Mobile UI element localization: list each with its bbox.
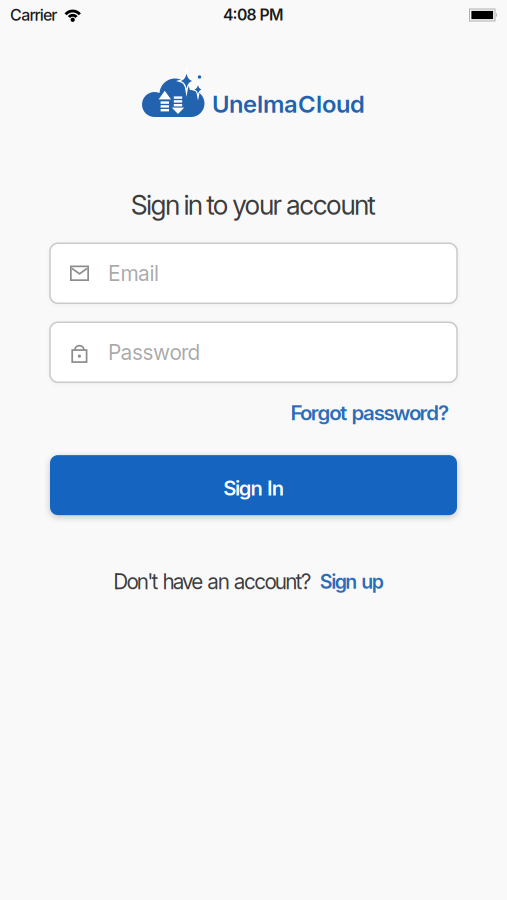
staticText: Forgot bbox=[290, 400, 347, 425]
staticText: UnelmaCloud bbox=[212, 89, 365, 118]
button[interactable]: Password bbox=[50, 322, 457, 382]
staticText: have bbox=[162, 569, 203, 594]
staticText: to bbox=[206, 189, 229, 221]
button[interactable]: Forgot password? bbox=[290, 400, 449, 425]
staticText: In bbox=[267, 476, 284, 500]
staticText: account? bbox=[234, 569, 312, 594]
staticText: Sign bbox=[320, 570, 357, 593]
staticText: your bbox=[232, 189, 282, 221]
staticText: an bbox=[207, 569, 230, 594]
button[interactable]: Email bbox=[50, 243, 457, 303]
button[interactable]: Sign up bbox=[320, 570, 384, 593]
button[interactable]: Sign bbox=[50, 455, 457, 515]
staticText: Email bbox=[108, 261, 159, 286]
staticText: Carrier bbox=[10, 5, 57, 25]
staticText: in bbox=[183, 189, 203, 221]
staticText: Sign bbox=[223, 476, 263, 500]
staticText: up bbox=[361, 570, 384, 593]
staticText: Password bbox=[108, 340, 200, 365]
staticText: 4:08 PM bbox=[223, 5, 284, 24]
staticText: Sign bbox=[131, 189, 180, 221]
staticText: Don't bbox=[113, 569, 158, 594]
staticText: account bbox=[286, 189, 376, 221]
staticText: password? bbox=[351, 400, 449, 425]
